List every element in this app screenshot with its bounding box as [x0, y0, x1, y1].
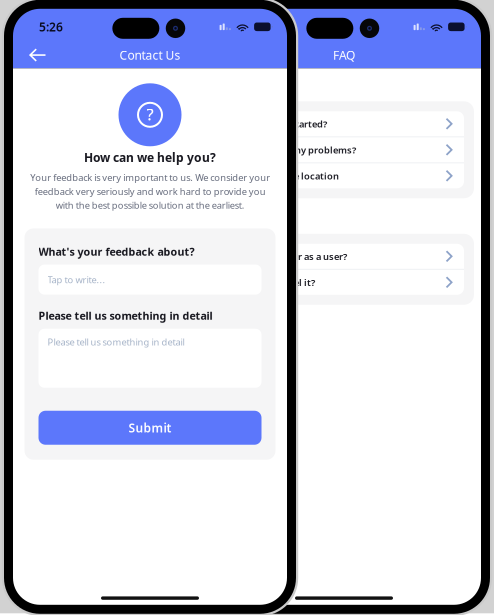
staticText: ? — [146, 104, 153, 125]
staticText: How do I cancel it? — [231, 276, 315, 288]
staticText: How do I get started? — [231, 118, 327, 130]
staticText: Submit — [128, 420, 171, 436]
button[interactable]: Submit — [38, 411, 261, 445]
button[interactable]: How do I cancel it? — [224, 270, 464, 295]
button[interactable]: How do I get started? — [224, 111, 464, 136]
staticText: How to register as a user? — [231, 250, 347, 262]
staticText: Please tell us something in detail — [47, 336, 184, 348]
button[interactable]: How to register as a user? — [224, 244, 464, 269]
staticText: Your feedback is very important to us. W… — [30, 171, 270, 211]
button[interactable]: What if I face any problems? — [224, 137, 464, 162]
staticText: What if I face any problems? — [231, 144, 356, 156]
staticText: Tap to write... — [47, 273, 105, 286]
button[interactable]: How to change location — [224, 163, 464, 188]
staticText: 5:26 — [39, 19, 63, 35]
staticText: Contact Us — [119, 47, 180, 63]
staticText: Please tell us something in detail — [38, 309, 212, 323]
staticText: What's your feedback about? — [38, 244, 194, 259]
button[interactable]: Back — [13, 42, 56, 69]
staticText: How to change location — [231, 170, 339, 182]
staticText: FAQ — [333, 47, 355, 63]
staticText: How can we help you? — [84, 149, 216, 165]
